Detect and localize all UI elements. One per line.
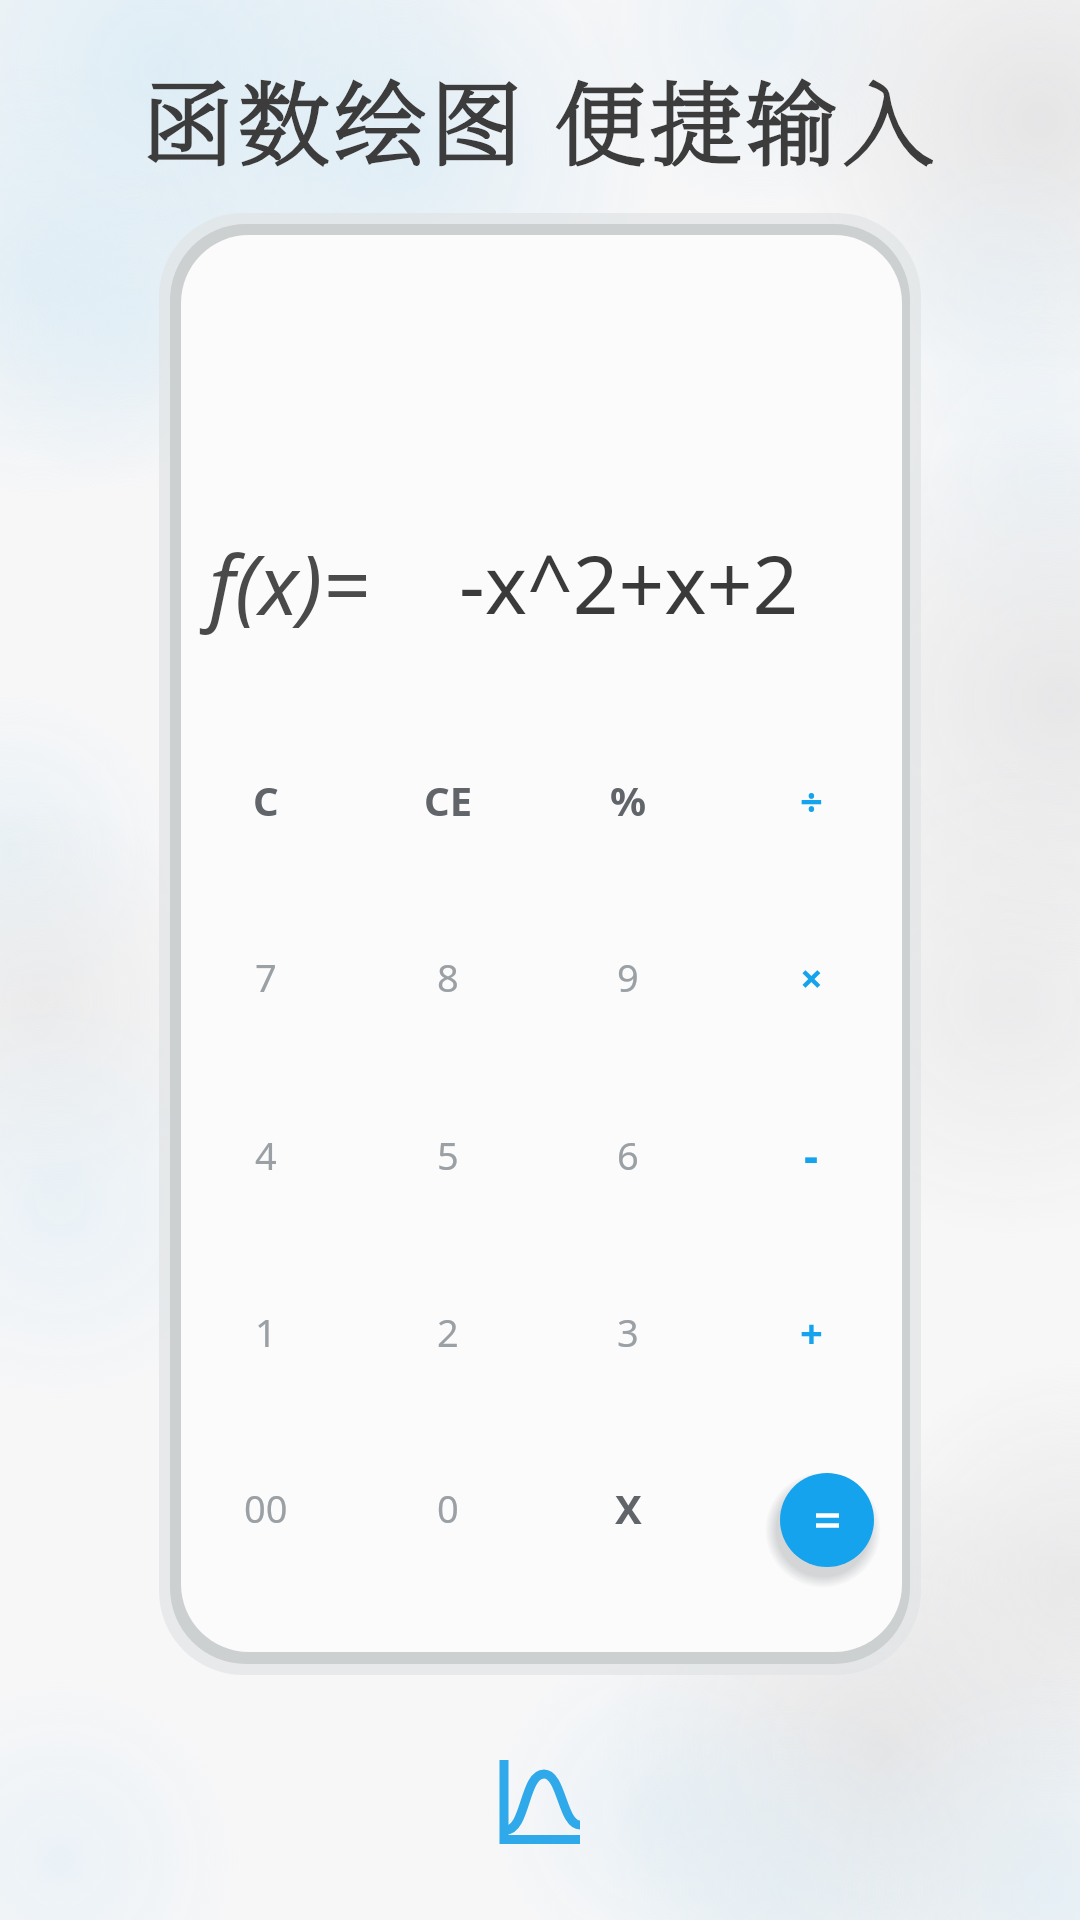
button[interactable]: % [558,740,698,860]
button[interactable]: C [196,740,336,860]
button[interactable]: 0 [378,1448,518,1568]
staticText: CE [424,773,473,827]
staticText: ÷ [800,773,823,827]
button[interactable]: + [741,1272,881,1392]
staticText: 8 [437,951,459,1003]
button[interactable]: ÷ [741,740,881,860]
staticText: 2 [437,1306,459,1358]
staticText: 3 [617,1306,639,1358]
button[interactable]: 1 [196,1272,336,1392]
staticText: 4 [255,1129,277,1181]
button[interactable] [780,1473,874,1567]
staticText: 7 [255,951,277,1003]
button[interactable] [496,1760,584,1848]
staticText: 00 [244,1482,288,1534]
button[interactable]: 8 [378,917,518,1037]
staticText: 函数绘图 便捷输入 [142,52,938,184]
staticText: % [610,773,647,827]
button[interactable]: - [741,1095,881,1215]
button[interactable]: 9 [558,917,698,1037]
staticText: f(x)= [209,527,370,639]
button[interactable]: 7 [196,917,336,1037]
staticText: C [253,773,279,827]
staticText: X [615,1481,642,1535]
staticText: × [800,950,823,1004]
button[interactable]: X [558,1448,698,1568]
staticText: -x^2+x+2 [459,528,799,637]
staticText: + [800,1305,823,1359]
button[interactable]: 5 [378,1095,518,1215]
button[interactable]: 6 [558,1095,698,1215]
staticText: 9 [617,951,639,1003]
staticText: - [804,1125,819,1185]
button[interactable]: 3 [558,1272,698,1392]
button[interactable]: 00 [196,1448,336,1568]
button[interactable]: 4 [196,1095,336,1215]
staticText: 1 [255,1306,277,1358]
button[interactable]: 2 [378,1272,518,1392]
staticText: 5 [437,1129,459,1181]
staticText: 0 [437,1482,459,1534]
button[interactable]: CE [378,740,518,860]
button[interactable]: × [741,917,881,1037]
staticText: 6 [617,1129,639,1181]
